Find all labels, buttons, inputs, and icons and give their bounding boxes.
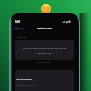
- staticText: AUTOMATIC: [16, 36, 28, 39]
- staticText: Save roll accuracy: [16, 78, 32, 81]
- staticText: Set your own iPhone screen time off by n…: [15, 46, 74, 55]
- staticText: 9:41: [15, 20, 21, 24]
- button[interactable]: Save roll accuracy: [15, 70, 74, 91]
- staticText: Another today at 17:47:05: [16, 84, 37, 86]
- staticText: NETWORK TIME: [12, 61, 77, 64]
- button[interactable]: Set your own iPhone screen time off by n…: [15, 40, 74, 60]
- staticText: Network Time: [12, 27, 78, 30]
- staticText: Settings: [17, 27, 25, 30]
- button[interactable]: Settings: [14, 26, 26, 31]
